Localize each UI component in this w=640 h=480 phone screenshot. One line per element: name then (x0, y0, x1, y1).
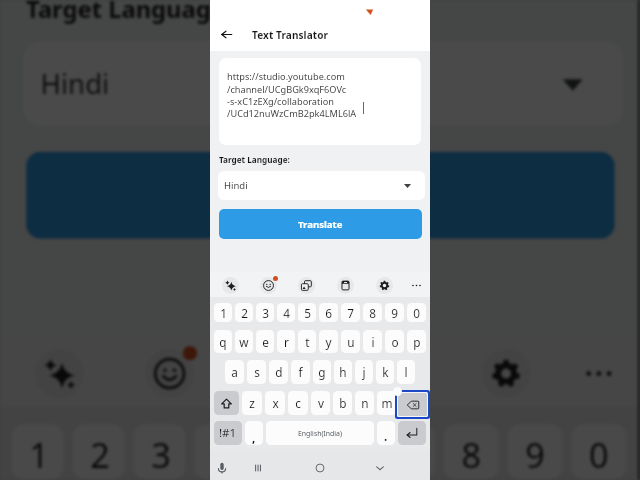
button[interactable]: Translate (219, 209, 422, 239)
button[interactable]: 7 (380, 424, 435, 479)
button[interactable]: keyboard tool (571, 346, 623, 398)
staticText: m (381, 395, 393, 411)
button[interactable]: x (265, 391, 285, 415)
button[interactable]: Hide keyboard (370, 458, 390, 478)
button[interactable]: 1 (214, 303, 232, 322)
button[interactable]: 4 (194, 424, 246, 479)
staticText: Hindi (41, 65, 110, 102)
button[interactable]: t (298, 330, 316, 353)
button[interactable]: c (288, 391, 308, 415)
button[interactable]: keyboard tool (297, 276, 315, 294)
staticText: 9 (391, 305, 398, 321)
button[interactable]: k (376, 360, 394, 384)
staticText: 9 (525, 430, 545, 476)
staticText: i (371, 334, 375, 350)
button[interactable]: a (225, 360, 244, 384)
staticText: 0 (413, 305, 420, 321)
button[interactable]: 1 (12, 424, 64, 479)
button[interactable]: https://studio.youtube.com /channel/UCgB… (219, 58, 421, 145)
staticText: Text Translator (252, 28, 329, 42)
button[interactable]: Home (310, 458, 330, 478)
button[interactable]: n (355, 391, 374, 415)
staticText: 5 (304, 305, 311, 321)
button[interactable]: Back (216, 24, 237, 45)
button[interactable]: f (291, 360, 310, 384)
button[interactable]: Recents (248, 458, 268, 478)
button[interactable]: keyboard tool (259, 276, 277, 294)
staticText: b (339, 395, 347, 411)
button[interactable]: 6 (316, 424, 371, 479)
staticText: 1 (220, 305, 227, 321)
button[interactable]: keyboard tool (375, 276, 393, 294)
button[interactable]: o (385, 330, 404, 353)
button[interactable]: Shift (214, 391, 239, 415)
button[interactable]: 0 (407, 303, 426, 322)
button[interactable]: Backspace (399, 391, 426, 415)
button[interactable]: 3 (133, 424, 186, 479)
button[interactable]: h (334, 360, 352, 384)
staticText: s (254, 364, 260, 380)
button[interactable]: y (319, 330, 338, 353)
staticText: 1 (29, 430, 49, 476)
staticText: Translate (255, 178, 386, 215)
button[interactable]: z (242, 391, 262, 415)
button[interactable]: English(India) (266, 421, 374, 445)
button[interactable]: s (247, 360, 266, 384)
button[interactable]: j (355, 360, 373, 384)
staticText: k (382, 364, 389, 380)
button[interactable]: keyboard tool (32, 346, 84, 398)
button[interactable]: r (277, 330, 295, 353)
button[interactable]: keyboard tool (336, 276, 354, 294)
button[interactable]: keyboard tool (478, 346, 531, 398)
staticText: x (272, 395, 279, 411)
button[interactable]: l (397, 360, 415, 384)
button[interactable]: 0 (571, 424, 626, 479)
staticText: r (284, 334, 289, 350)
button[interactable]: 8 (444, 424, 499, 479)
button[interactable]: 8 (363, 303, 382, 322)
button[interactable]: !#1 (214, 421, 242, 445)
staticText: Target Language: (219, 154, 290, 165)
button[interactable]: d (269, 360, 288, 384)
button[interactable]: 5 (298, 303, 316, 322)
button[interactable]: keyboard tool (221, 276, 239, 294)
button[interactable]: keyboard tool (252, 346, 304, 398)
staticText: p (413, 334, 421, 350)
button[interactable]: . (377, 421, 395, 445)
button[interactable]: 2 (235, 303, 253, 322)
button[interactable]: 9 (507, 424, 563, 479)
button[interactable]: 7 (341, 303, 360, 322)
staticText: 6 (325, 305, 332, 321)
button[interactable]: b (333, 391, 352, 415)
button[interactable]: 6 (319, 303, 338, 322)
button[interactable]: Hindi (218, 171, 425, 200)
button[interactable]: 4 (277, 303, 295, 322)
button[interactable]: q (214, 330, 232, 353)
staticText: !#1 (219, 425, 237, 441)
button[interactable]: v (311, 391, 330, 415)
button[interactable]: 3 (256, 303, 274, 322)
staticText: 4 (283, 305, 290, 321)
button[interactable]: g (313, 360, 331, 384)
staticText: l (404, 364, 408, 380)
button[interactable]: Enter (398, 421, 426, 445)
button[interactable]: keyboard tool (142, 346, 194, 398)
button[interactable]: p (407, 330, 426, 353)
staticText: 7 (397, 430, 418, 476)
button[interactable]: 9 (385, 303, 404, 322)
button[interactable]: e (256, 330, 274, 353)
button[interactable]: keyboard tool (407, 276, 425, 294)
button[interactable]: u (341, 330, 360, 353)
button[interactable]: 2 (72, 424, 125, 479)
button[interactable]: Backspace (398, 393, 427, 416)
button[interactable]: w (235, 330, 253, 353)
button[interactable]: Voice input (212, 458, 232, 478)
button[interactable]: keyboard tool (365, 346, 418, 398)
button[interactable]: , (245, 421, 263, 445)
button[interactable]: Translate (26, 152, 615, 239)
button[interactable]: Hindi (23, 41, 623, 126)
button[interactable]: 5 (255, 424, 307, 479)
button[interactable]: m (377, 391, 396, 415)
staticText: a (231, 364, 238, 380)
button[interactable]: i (363, 330, 382, 353)
